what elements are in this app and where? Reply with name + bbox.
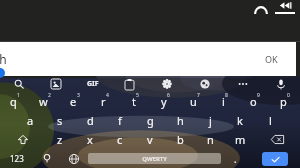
button[interactable]: n: [195, 130, 225, 149]
staticText: u: [190, 94, 197, 109]
button[interactable]: x: [75, 130, 105, 149]
button[interactable]: z: [45, 130, 75, 149]
button[interactable]: g: [135, 111, 165, 130]
button[interactable]: w: [30, 92, 60, 111]
staticText: th: [0, 51, 7, 67]
button[interactable]: Search: [0, 76, 37, 92]
button[interactable]: q: [0, 92, 30, 111]
staticText: 123: [10, 153, 24, 164]
staticText: 6: [167, 92, 170, 99]
button[interactable]: c: [105, 130, 135, 149]
staticText: g: [147, 113, 154, 128]
button[interactable]: Emoji: [33, 149, 60, 168]
button[interactable]: QWERTY: [88, 153, 221, 164]
button[interactable]: Rewind: [274, 1, 296, 14]
button[interactable]: Emoji: [186, 76, 224, 92]
button[interactable]: r: [90, 92, 120, 111]
button[interactable]: m: [225, 130, 255, 149]
button[interactable]: k: [225, 111, 255, 130]
button[interactable]: Backspace: [255, 130, 300, 149]
staticText: y: [161, 94, 167, 109]
staticText: 5: [136, 92, 139, 99]
button[interactable]: b: [165, 130, 195, 149]
staticText: d: [87, 113, 94, 128]
staticText: q: [10, 94, 17, 109]
staticText: e: [70, 94, 77, 109]
button[interactable]: GIF: [74, 76, 111, 92]
staticText: 0: [287, 92, 290, 99]
staticText: 2: [48, 92, 51, 99]
staticText: 1: [17, 92, 20, 99]
button[interactable]: h: [165, 111, 195, 130]
button[interactable]: e: [60, 92, 90, 111]
staticText: 8: [225, 92, 228, 99]
staticText: n: [207, 132, 214, 147]
button[interactable]: Headset: [251, 1, 271, 19]
button[interactable]: u: [180, 92, 210, 111]
button[interactable]: Shift: [0, 130, 45, 149]
staticText: QWERTY: [142, 155, 167, 163]
staticText: l: [269, 113, 272, 128]
button[interactable]: Stickers: [37, 76, 74, 92]
button[interactable]: Voice input: [262, 76, 300, 92]
staticText: t: [132, 94, 136, 109]
staticText: m: [235, 132, 246, 147]
staticText: p: [280, 94, 287, 109]
staticText: f: [118, 113, 122, 128]
button[interactable]: Clipboard: [111, 76, 148, 92]
staticText: b: [177, 132, 184, 147]
staticText: v: [147, 132, 153, 147]
staticText: i: [222, 94, 225, 109]
staticText: w: [39, 94, 48, 109]
button[interactable]: o: [240, 92, 270, 111]
button[interactable]: t: [120, 92, 150, 111]
button[interactable]: Enter: [249, 149, 300, 168]
button[interactable]: .: [222, 149, 249, 168]
button[interactable]: s: [45, 111, 75, 130]
staticText: s: [57, 113, 63, 128]
button[interactable]: More: [224, 76, 262, 92]
button[interactable]: l: [255, 111, 285, 130]
staticText: o: [250, 94, 257, 109]
button[interactable]: d: [75, 111, 105, 130]
button[interactable]: Change language: [60, 149, 87, 168]
staticText: j: [209, 113, 212, 128]
staticText: h: [177, 113, 184, 128]
button[interactable]: y: [150, 92, 180, 111]
staticText: c: [117, 132, 123, 147]
button[interactable]: v: [135, 130, 165, 149]
button[interactable]: 123: [0, 149, 33, 168]
staticText: a: [27, 113, 34, 128]
staticText: 4: [106, 92, 109, 99]
staticText: 9: [257, 92, 260, 99]
staticText: k: [237, 113, 243, 128]
staticText: x: [87, 132, 93, 147]
staticText: r: [101, 94, 106, 109]
button[interactable]: f: [105, 111, 135, 130]
button[interactable]: j: [195, 111, 225, 130]
button[interactable]: OK: [265, 53, 278, 65]
button[interactable]: i: [210, 92, 240, 111]
staticText: z: [57, 132, 63, 147]
staticText: 3: [77, 92, 80, 99]
button[interactable]: th: [0, 42, 296, 76]
button[interactable]: p: [270, 92, 300, 111]
button[interactable]: a: [15, 111, 45, 130]
staticText: .: [234, 152, 237, 166]
staticText: 7: [197, 92, 200, 99]
button[interactable]: Settings: [148, 76, 186, 92]
staticText: GIF: [87, 79, 99, 89]
